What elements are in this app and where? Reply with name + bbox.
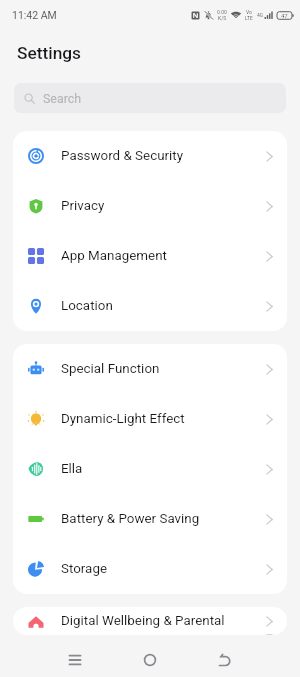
- staticText: 4G: [257, 12, 264, 18]
- button[interactable]: Special Function: [13, 344, 287, 394]
- button[interactable]: Password & Security: [13, 131, 287, 181]
- staticText: Privacy: [61, 198, 105, 214]
- staticText: Dynamic-Light Effect: [61, 411, 185, 427]
- button[interactable]: Battery & Power Saving: [13, 494, 287, 544]
- staticText: Settings: [17, 43, 82, 63]
- staticText: Ella: [61, 461, 83, 477]
- button[interactable]: Home: [137, 635, 163, 677]
- button[interactable]: Storage: [13, 544, 287, 594]
- staticText: Storage: [61, 561, 108, 577]
- button[interactable]: Back: [212, 635, 238, 677]
- staticText: 11:42 AM: [12, 9, 57, 21]
- staticText: 47: [281, 12, 288, 19]
- staticText: App Management: [61, 248, 167, 264]
- staticText: K/S: [218, 15, 227, 21]
- staticText: Search: [43, 91, 82, 106]
- staticText: Digital Wellbeing & Parental: [61, 613, 225, 629]
- staticText: Password & Security: [61, 148, 184, 164]
- button[interactable]: Ella: [13, 444, 287, 494]
- button[interactable]: Location: [13, 281, 287, 331]
- button[interactable]: Search: [14, 83, 286, 113]
- staticText: LTE: [245, 15, 253, 21]
- staticText: 0.00: [217, 9, 227, 15]
- button[interactable]: Dynamic-Light Effect: [13, 394, 287, 444]
- staticText: Vo: [246, 9, 252, 15]
- staticText: Location: [61, 298, 113, 314]
- button[interactable]: Digital Wellbeing & Parental: [13, 607, 287, 635]
- button[interactable]: App Management: [13, 231, 287, 281]
- staticText: Battery & Power Saving: [61, 511, 200, 527]
- staticText: Special Function: [61, 361, 160, 377]
- button[interactable]: Recent apps: [62, 635, 88, 677]
- button[interactable]: Privacy: [13, 181, 287, 231]
